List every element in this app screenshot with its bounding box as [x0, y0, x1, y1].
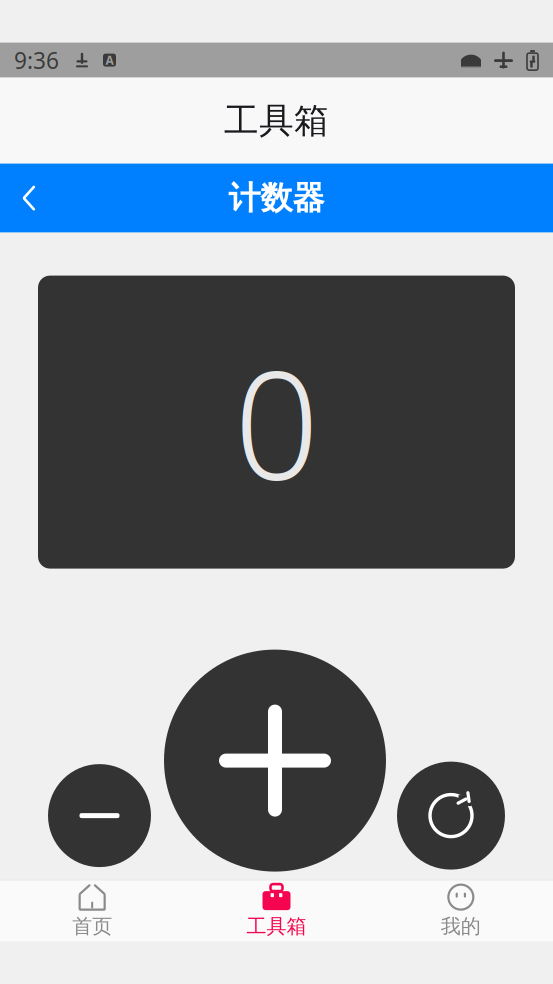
button[interactable]: 返回 — [0, 164, 58, 233]
button[interactable]: 首页 — [0, 880, 184, 942]
button[interactable]: 工具箱 — [184, 880, 369, 942]
staticText: A — [105, 52, 113, 68]
button[interactable]: 我的 — [369, 880, 553, 942]
staticText: 工具箱 — [224, 99, 329, 142]
staticText: 0 — [234, 323, 319, 521]
staticText: 计数器 — [228, 178, 324, 218]
staticText: 我的 — [441, 914, 481, 939]
button[interactable]: 重置 — [397, 762, 505, 870]
staticText: 9:36 — [14, 45, 59, 75]
staticText: 工具箱 — [246, 914, 306, 939]
button[interactable]: 减一 — [48, 764, 151, 867]
staticText: 首页 — [72, 914, 112, 939]
button[interactable]: 加一 — [164, 650, 386, 872]
